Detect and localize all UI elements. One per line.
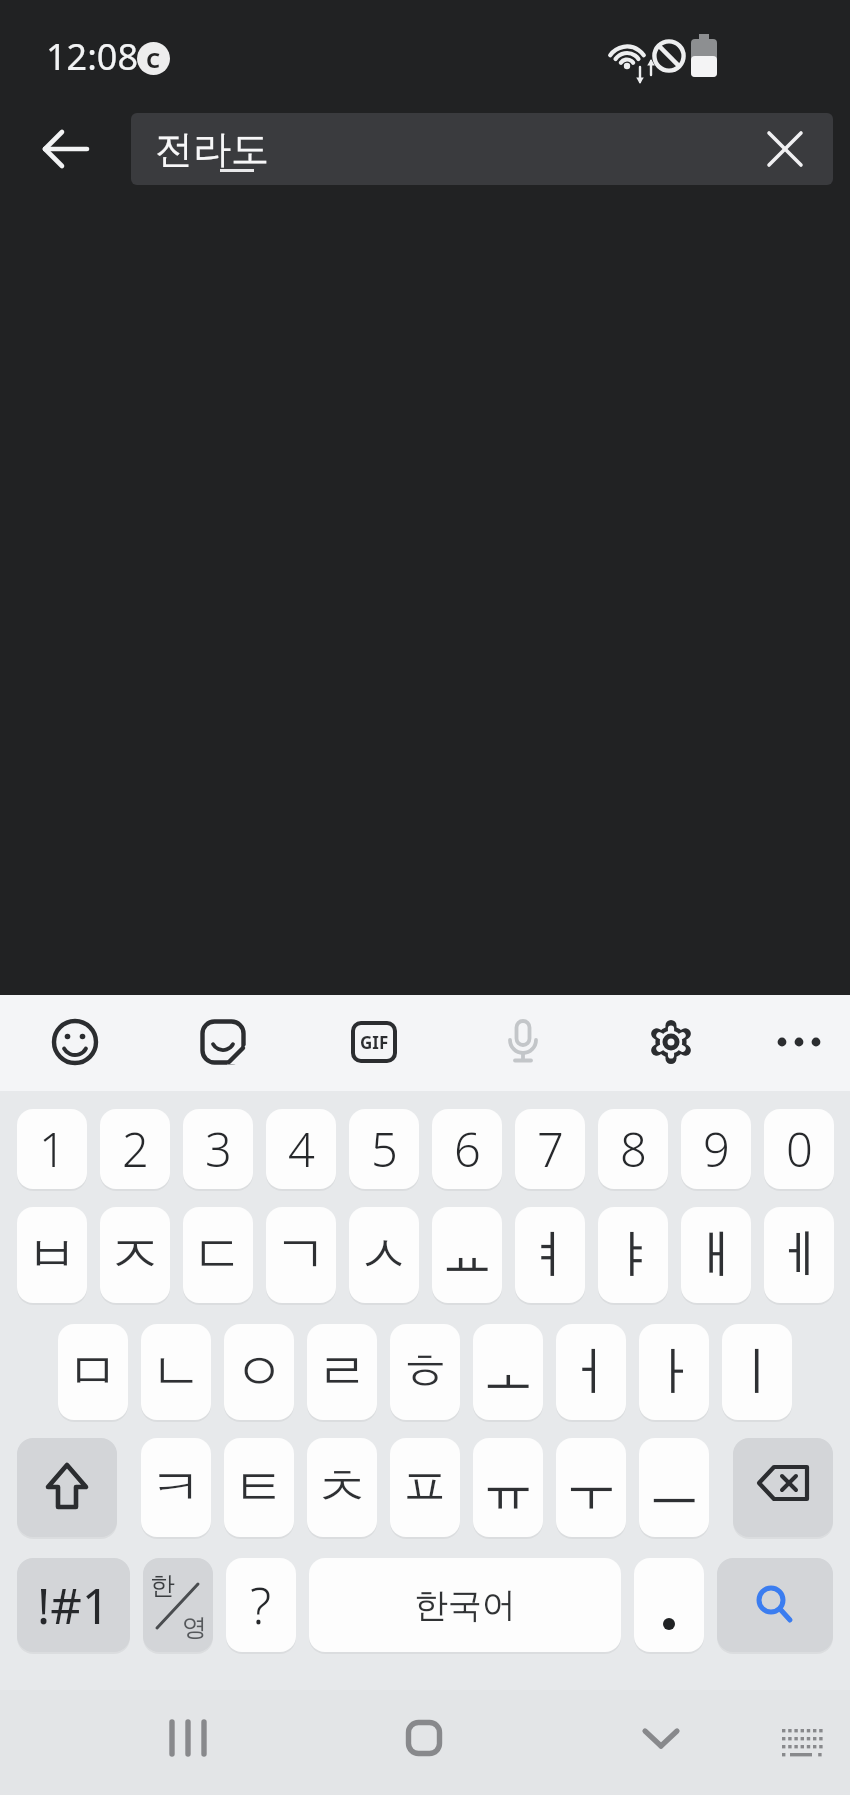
button[interactable]: 5 — [349, 1109, 419, 1189]
button[interactable]: ㄱ — [266, 1207, 336, 1303]
staticText: 8 — [620, 1117, 647, 1181]
staticText: ㅎ — [399, 1339, 451, 1405]
button[interactable]: ㅡ — [639, 1438, 709, 1537]
staticText: ㅌ — [233, 1455, 285, 1521]
staticText: 4 — [288, 1117, 315, 1181]
button[interactable] — [717, 1558, 833, 1652]
button[interactable]: ㄹ — [307, 1324, 377, 1420]
staticText: ㅅ — [358, 1222, 410, 1288]
staticText: ㅛ — [441, 1222, 493, 1288]
button[interactable]: ㅓ — [556, 1324, 626, 1420]
staticText: !#1 — [37, 1572, 110, 1639]
staticText: ㅂ — [26, 1222, 78, 1288]
button[interactable]: ? — [226, 1558, 296, 1652]
staticText: 한국어 — [414, 1584, 516, 1627]
button[interactable]: 6 — [432, 1109, 502, 1189]
staticText: ㄱ — [275, 1222, 327, 1288]
button[interactable]: ㅣ — [722, 1324, 792, 1420]
button[interactable]: ㅌ — [224, 1438, 294, 1537]
staticText: ㅈ — [109, 1222, 161, 1288]
staticText: 6 — [454, 1117, 481, 1181]
button[interactable]: ㅕ — [515, 1207, 585, 1303]
staticText: GIF — [360, 1031, 389, 1054]
button[interactable]: ㅔ — [764, 1207, 834, 1303]
button[interactable] — [45, 1012, 105, 1072]
button[interactable] — [621, 1708, 701, 1768]
staticText: ㅐ — [690, 1222, 742, 1288]
button[interactable]: !#1 — [17, 1558, 130, 1652]
staticText: 0 — [786, 1117, 813, 1181]
button[interactable]: 8 — [598, 1109, 668, 1189]
staticText: 7 — [537, 1117, 564, 1181]
button[interactable]: 전라도 — [131, 113, 833, 185]
staticText: ㅣ — [731, 1339, 783, 1405]
staticText: ㅓ — [565, 1339, 617, 1405]
staticText: ㅡ — [648, 1455, 700, 1521]
button[interactable]: ㅏ — [639, 1324, 709, 1420]
staticText: ㅇ — [233, 1339, 285, 1405]
button[interactable]: 9 — [681, 1109, 751, 1189]
button[interactable]: ㅜ — [556, 1438, 626, 1537]
button[interactable]: ㅇ — [224, 1324, 294, 1420]
staticText: 1 — [39, 1117, 66, 1181]
staticText: ㅑ — [607, 1222, 659, 1288]
button[interactable]: 3 — [183, 1109, 253, 1189]
staticText: ㅔ — [773, 1222, 825, 1288]
staticText: ㅠ — [482, 1455, 534, 1521]
button[interactable] — [493, 1012, 553, 1072]
button[interactable]: ㄷ — [183, 1207, 253, 1303]
button[interactable] — [30, 113, 102, 185]
button[interactable]: 1 — [17, 1109, 87, 1189]
button[interactable]: 한 — [143, 1558, 213, 1652]
button[interactable]: ㅂ — [17, 1207, 87, 1303]
button[interactable]: ㅅ — [349, 1207, 419, 1303]
button[interactable] — [384, 1708, 464, 1768]
button[interactable]: ㅊ — [307, 1438, 377, 1537]
button[interactable]: 2 — [100, 1109, 170, 1189]
button[interactable] — [193, 1012, 253, 1072]
button[interactable] — [148, 1708, 228, 1768]
staticText: ? — [250, 1571, 272, 1639]
button[interactable] — [733, 1438, 833, 1537]
button[interactable]: ㅁ — [58, 1324, 128, 1420]
button[interactable] — [769, 1012, 829, 1072]
button[interactable] — [770, 1716, 834, 1768]
staticText: 9 — [703, 1117, 730, 1181]
staticText: ㅋ — [150, 1455, 202, 1521]
button[interactable] — [755, 119, 815, 179]
staticText: ㅕ — [524, 1222, 576, 1288]
button[interactable] — [634, 1558, 704, 1652]
button[interactable]: GIF — [351, 1021, 397, 1063]
staticText: 영 — [182, 1612, 207, 1643]
staticText: ㅍ — [399, 1455, 451, 1521]
button[interactable]: 7 — [515, 1109, 585, 1189]
staticText: 전라도 — [155, 125, 269, 173]
button[interactable]: ㅎ — [390, 1324, 460, 1420]
button[interactable]: ㅗ — [473, 1324, 543, 1420]
staticText: ㅁ — [67, 1339, 119, 1405]
staticText: 3 — [205, 1117, 232, 1181]
button[interactable]: ㅐ — [681, 1207, 751, 1303]
staticText: ㅗ — [482, 1339, 534, 1405]
button[interactable]: ㄴ — [141, 1324, 211, 1420]
button[interactable]: ㅑ — [598, 1207, 668, 1303]
button[interactable]: 0 — [764, 1109, 834, 1189]
staticText: ㄴ — [150, 1339, 202, 1405]
staticText: 한 — [150, 1570, 175, 1601]
button[interactable]: ㅠ — [473, 1438, 543, 1537]
button[interactable]: ㅍ — [390, 1438, 460, 1537]
button[interactable]: ㅋ — [141, 1438, 211, 1537]
button[interactable]: ㅛ — [432, 1207, 502, 1303]
button[interactable]: 4 — [266, 1109, 336, 1189]
staticText: 2 — [122, 1117, 149, 1181]
button[interactable] — [17, 1438, 117, 1537]
button[interactable] — [641, 1012, 701, 1072]
staticText: 12:08 — [46, 32, 139, 80]
staticText: ㄷ — [192, 1222, 244, 1288]
staticText: ㅏ — [648, 1339, 700, 1405]
button[interactable]: ㅈ — [100, 1207, 170, 1303]
staticText: ㅜ — [565, 1455, 617, 1521]
staticText: ㄹ — [316, 1339, 368, 1405]
button[interactable]: 한국어 — [309, 1558, 621, 1652]
staticText: ㅊ — [316, 1455, 368, 1521]
